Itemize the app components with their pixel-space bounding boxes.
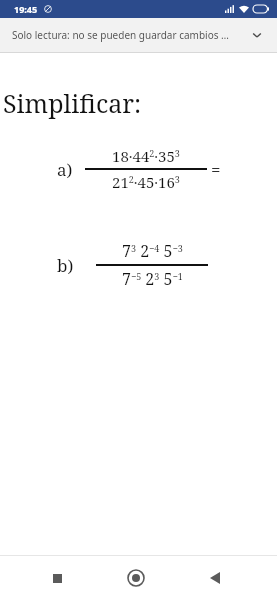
staticText: 18·442·353 — [112, 146, 180, 166]
staticText: 73 2−4 5−3 — [122, 240, 183, 262]
button[interactable]: Home — [114, 556, 158, 600]
button[interactable]: Solo lectura: no se pueden guardar cambi… — [0, 18, 277, 52]
staticText: Simplificar: — [3, 86, 142, 120]
staticText: = — [211, 158, 221, 181]
staticText: 7−5 23 5−1 — [122, 268, 183, 290]
staticText: 212·45·163 — [112, 172, 180, 192]
staticText: Solo lectura: no se pueden guardar cambi… — [12, 28, 249, 42]
other: Expand — [249, 27, 265, 43]
button[interactable]: Back — [193, 556, 237, 600]
staticText: 19:45 — [14, 3, 38, 15]
button[interactable]: Recent apps — [35, 556, 79, 600]
staticText: a) — [57, 158, 73, 181]
staticText: b) — [57, 254, 74, 277]
